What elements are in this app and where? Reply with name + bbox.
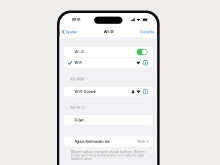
staticText: Düzenle (140, 30, 154, 34)
staticText: 09:41 (72, 18, 80, 21)
staticText: AĞLARIM (70, 78, 84, 81)
button[interactable]: Ayarlar (59, 28, 77, 36)
staticText: AĞLAR (70, 106, 80, 109)
button[interactable]: Diğer... (64, 115, 152, 125)
button[interactable]: Düzenle (140, 28, 157, 36)
staticText: Ağlara Katılmadan Sor (74, 139, 109, 144)
staticText: WiFi (74, 60, 82, 65)
staticText: Wi-Fi (103, 29, 113, 34)
staticText: Bildir (137, 139, 145, 144)
button[interactable]: Ağlara Katılmadan Sor (64, 136, 152, 147)
button[interactable]: Wi-Fi (64, 47, 152, 57)
staticText: Ayarlar (66, 30, 77, 34)
staticText: WiFi Güvenli (74, 89, 96, 94)
button[interactable]: WiFi Güvenli (64, 87, 152, 96)
staticText: Diğer... (74, 118, 86, 122)
button[interactable]: WiFi (64, 57, 152, 68)
staticText: Wi-Fi (74, 50, 84, 54)
staticText: Bilinen ağlara otomatik olarak katılınır… (71, 150, 145, 161)
